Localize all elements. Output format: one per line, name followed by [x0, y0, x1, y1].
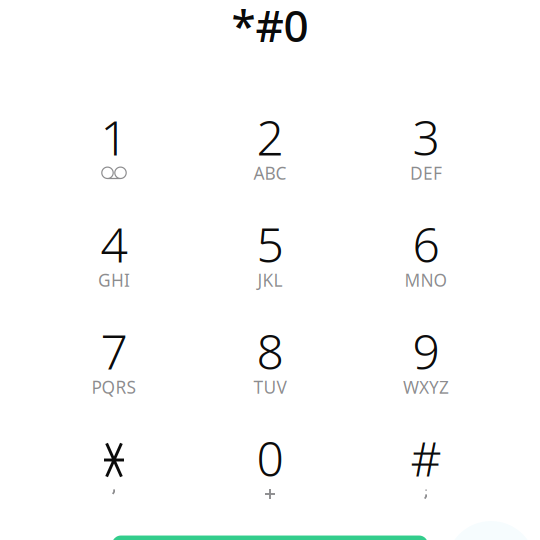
staticText: 5 — [256, 212, 283, 276]
staticText: JKL — [257, 268, 282, 291]
staticText: 7 — [100, 319, 127, 383]
staticText: 4 — [100, 212, 127, 276]
staticText: 0 — [256, 426, 283, 490]
button[interactable]: 3 — [348, 110, 504, 217]
staticText: DEF — [410, 161, 442, 184]
staticText: TUV — [253, 375, 286, 398]
button[interactable]: 8 — [192, 324, 348, 431]
button[interactable]: 6 — [348, 217, 504, 324]
staticText: GHI — [98, 268, 130, 291]
staticText: 6 — [412, 212, 439, 276]
staticText: # — [410, 426, 441, 490]
staticText: 1 — [100, 105, 127, 169]
button[interactable]: 1 — [36, 110, 192, 217]
button[interactable]: 7 — [36, 324, 192, 431]
staticText: ABC — [253, 161, 286, 184]
staticText: 8 — [256, 319, 283, 383]
button[interactable]: Call — [112, 535, 428, 540]
staticText: 3 — [412, 105, 439, 169]
staticText: 2 — [256, 105, 283, 169]
staticText: WXYZ — [403, 375, 449, 398]
button[interactable]: # — [348, 431, 504, 538]
staticText: PQRS — [91, 375, 136, 398]
button[interactable]: 0 — [192, 431, 348, 538]
staticText: MNO — [404, 268, 447, 291]
button[interactable]: 4 — [36, 217, 192, 324]
button[interactable]: 9 — [348, 324, 504, 431]
staticText: 9 — [412, 319, 439, 383]
staticText: *#0 — [231, 0, 308, 54]
button[interactable]: *#0 — [70, 0, 470, 50]
button[interactable]: 2 — [192, 110, 348, 217]
button[interactable] — [36, 431, 192, 538]
button[interactable]: 5 — [192, 217, 348, 324]
button[interactable]: Delete — [446, 521, 536, 540]
